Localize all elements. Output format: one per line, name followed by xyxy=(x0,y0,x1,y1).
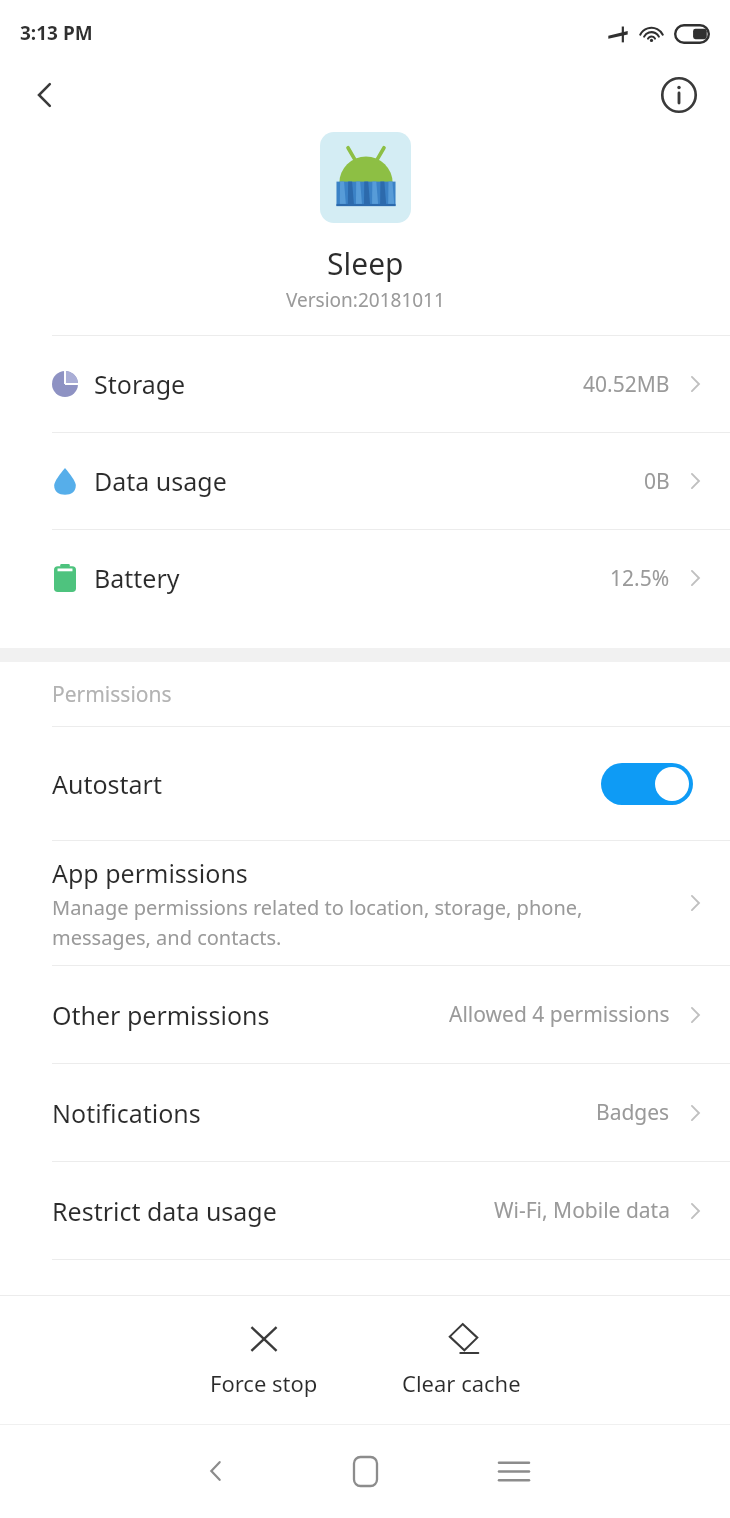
button[interactable]: Home xyxy=(334,1440,396,1502)
staticText: 40.52MB xyxy=(583,370,670,399)
staticText: Allowed 4 permissions xyxy=(449,1000,670,1029)
button[interactable]: Storage xyxy=(0,336,730,432)
button[interactable]: Notifications xyxy=(0,1064,730,1161)
staticText: Battery xyxy=(94,561,180,595)
button[interactable]: Data usage xyxy=(0,433,730,529)
button[interactable]: Clear cache xyxy=(386,1314,537,1406)
staticText: Badges xyxy=(596,1098,670,1127)
staticText: 0B xyxy=(644,467,670,496)
staticText: Autostart xyxy=(52,767,162,801)
button[interactable]: Restrict data usage xyxy=(0,1162,730,1259)
staticText: Manage permissions related to location, … xyxy=(52,894,583,951)
staticText: 12.5% xyxy=(610,564,670,593)
staticText: App permissions xyxy=(52,856,248,890)
button[interactable]: Battery xyxy=(0,530,730,626)
staticText: Version:20181011 xyxy=(286,287,445,313)
button[interactable]: Back xyxy=(14,66,76,124)
staticText: Sleep xyxy=(327,243,404,284)
button[interactable]: Back xyxy=(185,1440,247,1502)
button[interactable]: Other permissions xyxy=(0,966,730,1063)
staticText: Clear cache xyxy=(402,1368,521,1398)
button[interactable]: App info xyxy=(648,66,710,124)
button[interactable]: Autostart xyxy=(0,727,730,840)
button[interactable]: Recent apps xyxy=(483,1440,545,1502)
staticText: Notifications xyxy=(52,1096,201,1130)
staticText: Data usage xyxy=(94,464,227,498)
staticText: Other permissions xyxy=(52,998,270,1032)
staticText: Wi-Fi, Mobile data xyxy=(494,1196,670,1225)
button[interactable]: Force stop xyxy=(194,1314,334,1406)
staticText: 3:13 PM xyxy=(20,20,93,46)
button[interactable]: App permissions xyxy=(0,841,730,965)
staticText: Permissions xyxy=(52,680,172,709)
staticText: Restrict data usage xyxy=(52,1194,277,1228)
staticText: Force stop xyxy=(210,1368,318,1398)
staticText: Storage xyxy=(94,367,186,401)
